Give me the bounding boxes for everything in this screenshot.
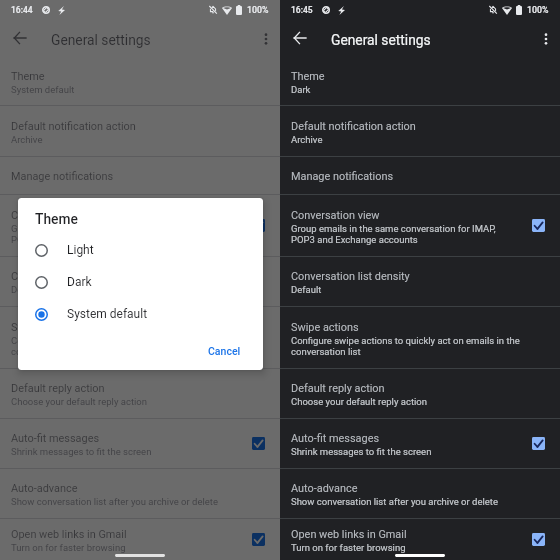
button[interactable]: Conversation list density (280, 257, 560, 306)
button[interactable]: Default notification action (0, 106, 280, 156)
button[interactable]: Navigate up (286, 24, 314, 52)
button[interactable]: Manage notifications (280, 157, 560, 194)
button[interactable]: Theme (0, 58, 280, 105)
staticText: Theme (291, 70, 325, 83)
staticText: Default (291, 284, 322, 295)
button[interactable]: Swipe actions (280, 307, 560, 368)
staticText: Default (11, 284, 42, 295)
staticText: Turn on for faster browsing (11, 542, 126, 553)
staticText: Manage notifications (11, 170, 114, 183)
staticText: General settings (51, 32, 151, 48)
staticText: Choose your default reply action (11, 396, 147, 407)
button[interactable]: Default notification action (280, 106, 560, 156)
staticText: 16:45 (291, 5, 313, 15)
staticText: Default reply action (291, 382, 385, 395)
button[interactable]: Open web links in Gmail (280, 519, 560, 560)
staticText: Configure swipe actions to quickly act o… (291, 335, 530, 357)
staticText: Configure swipe actions to quickly act o… (11, 335, 250, 357)
button[interactable]: Dark (18, 266, 263, 298)
staticText: Auto-fit messages (11, 432, 100, 445)
button[interactable]: More options (253, 26, 279, 52)
staticText: Show conversation list after you archive… (291, 496, 498, 507)
staticText: Archive (291, 134, 323, 145)
button[interactable]: Conversation list density (0, 257, 280, 306)
staticText: Auto-advance (291, 482, 358, 495)
staticText: Conversation view (291, 209, 380, 222)
button[interactable]: Conversation view (0, 195, 280, 256)
button[interactable]: Light (18, 234, 263, 266)
staticText: Light (67, 243, 94, 257)
staticText: Open web links in Gmail (11, 528, 127, 541)
staticText: Conversation view (11, 209, 100, 222)
staticText: Dark (291, 84, 311, 95)
button[interactable]: Auto-advance (0, 469, 280, 518)
button[interactable]: Swipe actions (0, 307, 280, 368)
staticText: Default reply action (11, 382, 105, 395)
button[interactable]: Auto-advance (280, 469, 560, 518)
staticText: Auto-advance (11, 482, 78, 495)
staticText: Swipe actions (291, 321, 359, 334)
button[interactable]: Auto-fit messages (280, 419, 560, 468)
staticText: General settings (331, 32, 431, 48)
button[interactable]: System default (18, 298, 263, 330)
staticText: Theme (35, 211, 78, 227)
staticText: 100% (247, 5, 269, 15)
button[interactable]: Default reply action (280, 369, 560, 418)
staticText: Conversation list density (11, 270, 130, 283)
staticText: Archive (11, 134, 43, 145)
staticText: Default notification action (291, 120, 416, 133)
button[interactable]: Manage notifications (0, 157, 280, 194)
staticText: Swipe actions (11, 321, 79, 334)
staticText: Turn on for faster browsing (291, 542, 406, 553)
staticText: Shrink messages to fit the screen (11, 446, 152, 457)
staticText: Dark (67, 275, 92, 289)
staticText: Manage notifications (291, 170, 394, 183)
staticText: Group emails in the same conversation fo… (11, 223, 231, 245)
staticText: Auto-fit messages (291, 432, 380, 445)
button[interactable]: Auto-fit messages (0, 419, 280, 468)
staticText: System default (67, 307, 148, 321)
staticText: System default (11, 84, 75, 95)
staticText: Open web links in Gmail (291, 528, 407, 541)
button[interactable]: Cancel (200, 339, 249, 363)
staticText: Default notification action (11, 120, 136, 133)
button[interactable]: More options (533, 26, 559, 52)
staticText: Choose your default reply action (291, 396, 427, 407)
button[interactable]: Navigate up (6, 24, 34, 52)
button[interactable]: Open web links in Gmail (0, 519, 280, 560)
staticText: Theme (11, 70, 45, 83)
staticText: 16:44 (11, 5, 33, 15)
button[interactable]: Default reply action (0, 369, 280, 418)
button[interactable]: Theme (280, 58, 560, 105)
staticText: Cancel (208, 345, 241, 357)
staticText: Group emails in the same conversation fo… (291, 223, 511, 245)
staticText: Conversation list density (291, 270, 410, 283)
staticText: Shrink messages to fit the screen (291, 446, 432, 457)
staticText: 100% (527, 5, 549, 15)
staticText: Show conversation list after you archive… (11, 496, 218, 507)
button[interactable]: Conversation view (280, 195, 560, 256)
